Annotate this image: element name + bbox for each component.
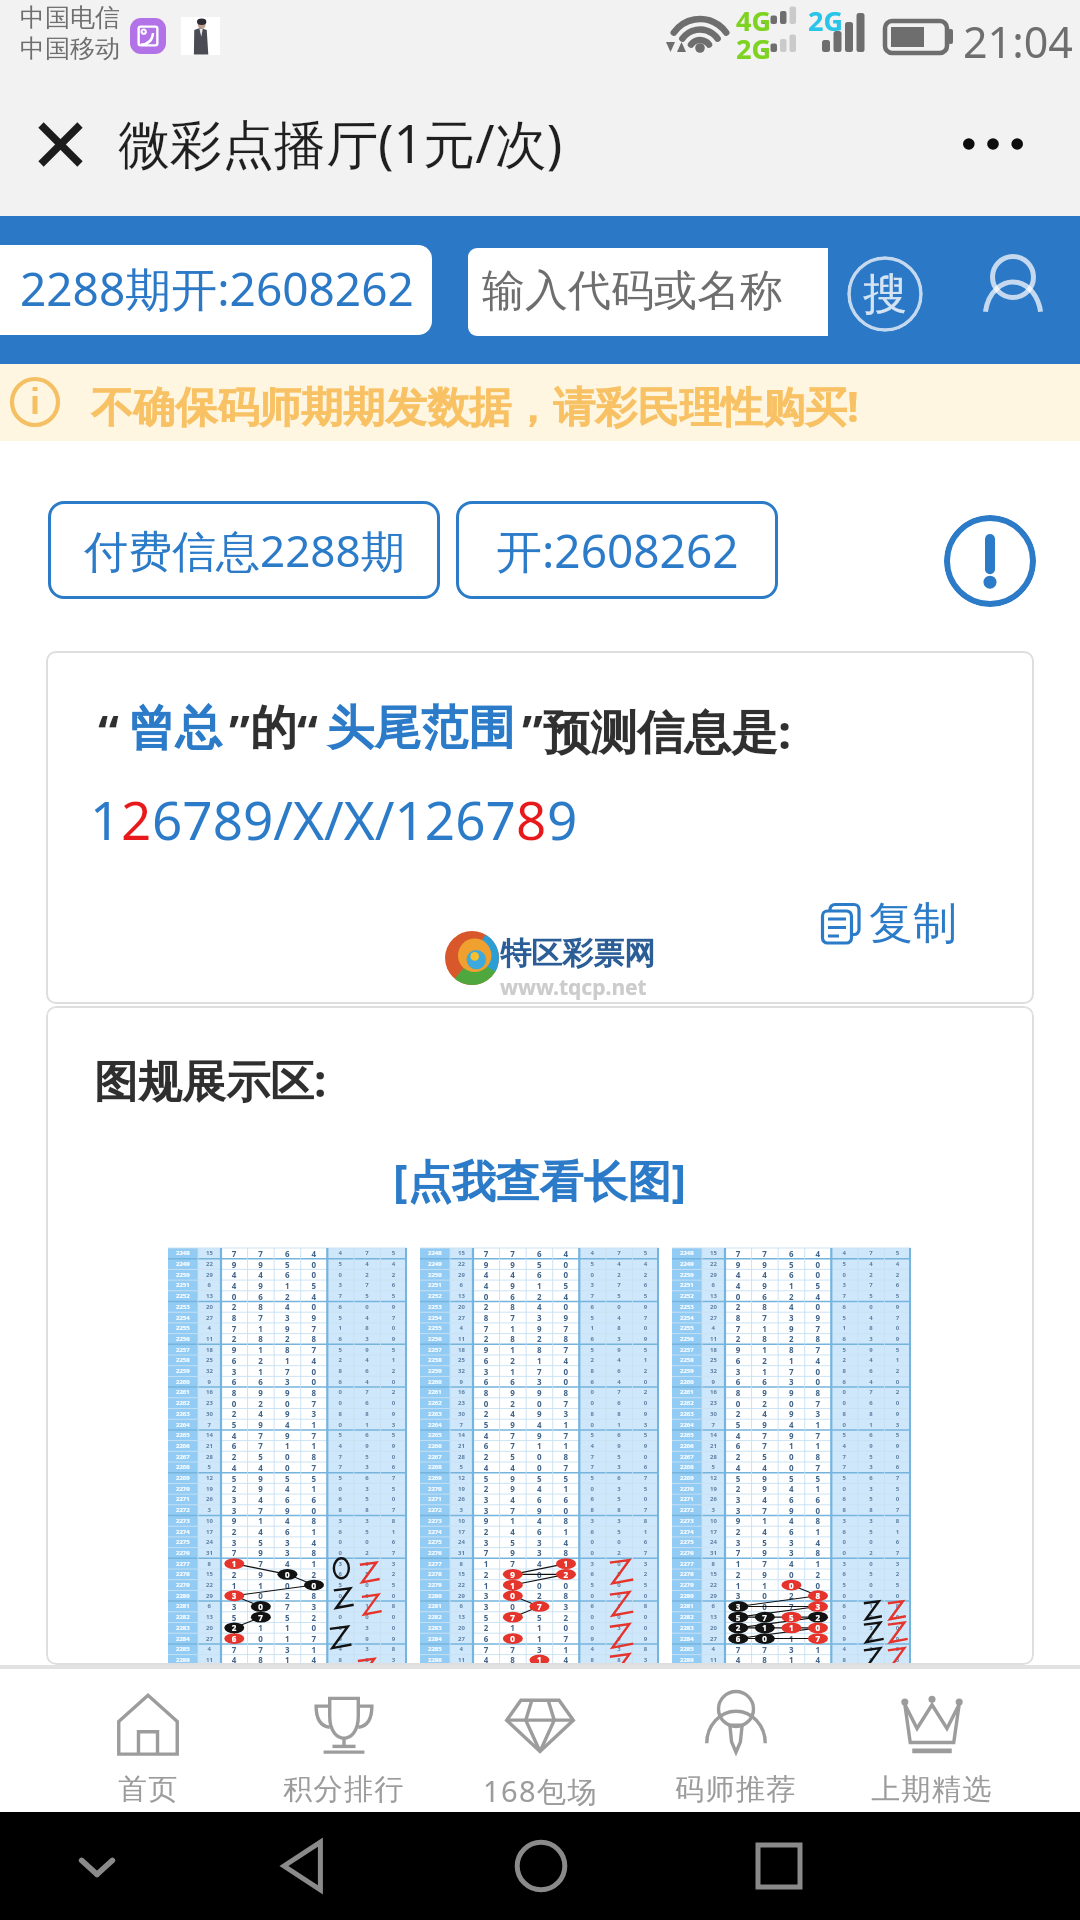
staticText: 图规展示区: bbox=[94, 1050, 327, 1110]
staticText: 的 bbox=[250, 699, 297, 758]
button[interactable]: Account bbox=[983, 256, 1043, 320]
button[interactable]: More options bbox=[938, 99, 1048, 189]
button[interactable]: 码师推荐 bbox=[638, 1669, 834, 1812]
staticText: ” bbox=[229, 699, 250, 763]
button[interactable]: 首页 bbox=[50, 1669, 246, 1812]
button[interactable]: 开:2608262 bbox=[456, 501, 778, 599]
staticText: 搜 bbox=[863, 267, 907, 322]
staticText: 中国移动 bbox=[20, 33, 120, 64]
staticText: 9 bbox=[547, 783, 578, 855]
button[interactable]: 输入代码或名称 bbox=[468, 248, 828, 336]
staticText: 不确保码师期期发数据，请彩民理性购买! bbox=[91, 377, 859, 434]
button[interactable]: 复制 bbox=[821, 896, 957, 951]
button[interactable]: Search bbox=[847, 256, 923, 332]
staticText: www.tqcp.net bbox=[500, 973, 647, 1002]
staticText: 168包场 bbox=[483, 1771, 598, 1811]
staticText: 特区彩票网 bbox=[500, 934, 655, 973]
button[interactable]: Warning information bbox=[944, 515, 1036, 607]
staticText: 2288期开:2608262 bbox=[20, 257, 414, 320]
staticText: 2 bbox=[121, 783, 152, 855]
button[interactable]: 168包场 bbox=[442, 1669, 638, 1812]
staticText: 微彩点播厅(1元/次) bbox=[118, 107, 563, 178]
staticText: 付费信息2288期 bbox=[84, 520, 405, 580]
staticText: ” bbox=[522, 699, 543, 763]
staticText: 2G bbox=[808, 2, 843, 39]
staticText: 4G bbox=[736, 2, 771, 39]
staticText: 开:2608262 bbox=[496, 519, 739, 582]
button[interactable]: 2288期开:2608262 bbox=[0, 245, 432, 335]
staticText: 头尾范围 bbox=[327, 699, 515, 758]
button[interactable]: 积分排行 bbox=[246, 1669, 442, 1812]
staticText: “ bbox=[98, 699, 119, 763]
button[interactable]: [点我查看长图] bbox=[393, 1150, 687, 1210]
staticText: 首页 bbox=[118, 1771, 179, 1808]
button[interactable]: 上期精选 bbox=[834, 1669, 1030, 1812]
staticText: 码师推荐 bbox=[675, 1771, 797, 1808]
staticText: 8 bbox=[516, 783, 547, 855]
button[interactable]: 付费信息2288期 bbox=[48, 501, 440, 599]
button[interactable]: Close bbox=[20, 104, 100, 184]
staticText: 预测信息是: bbox=[543, 699, 792, 763]
staticText: 输入代码或名称 bbox=[482, 264, 783, 318]
staticText: 上期精选 bbox=[871, 1771, 993, 1808]
staticText: 2G bbox=[736, 30, 771, 67]
staticText: 积分排行 bbox=[283, 1771, 405, 1808]
staticText: 6789/X/X/1267 bbox=[152, 783, 516, 855]
staticText: 曾总 bbox=[128, 699, 222, 758]
staticText: 21:04 bbox=[963, 12, 1073, 71]
staticText: “ bbox=[297, 699, 318, 763]
staticText: 复制 bbox=[869, 896, 957, 951]
staticText: 中国电信 bbox=[20, 2, 120, 33]
staticText: 1 bbox=[90, 783, 121, 855]
